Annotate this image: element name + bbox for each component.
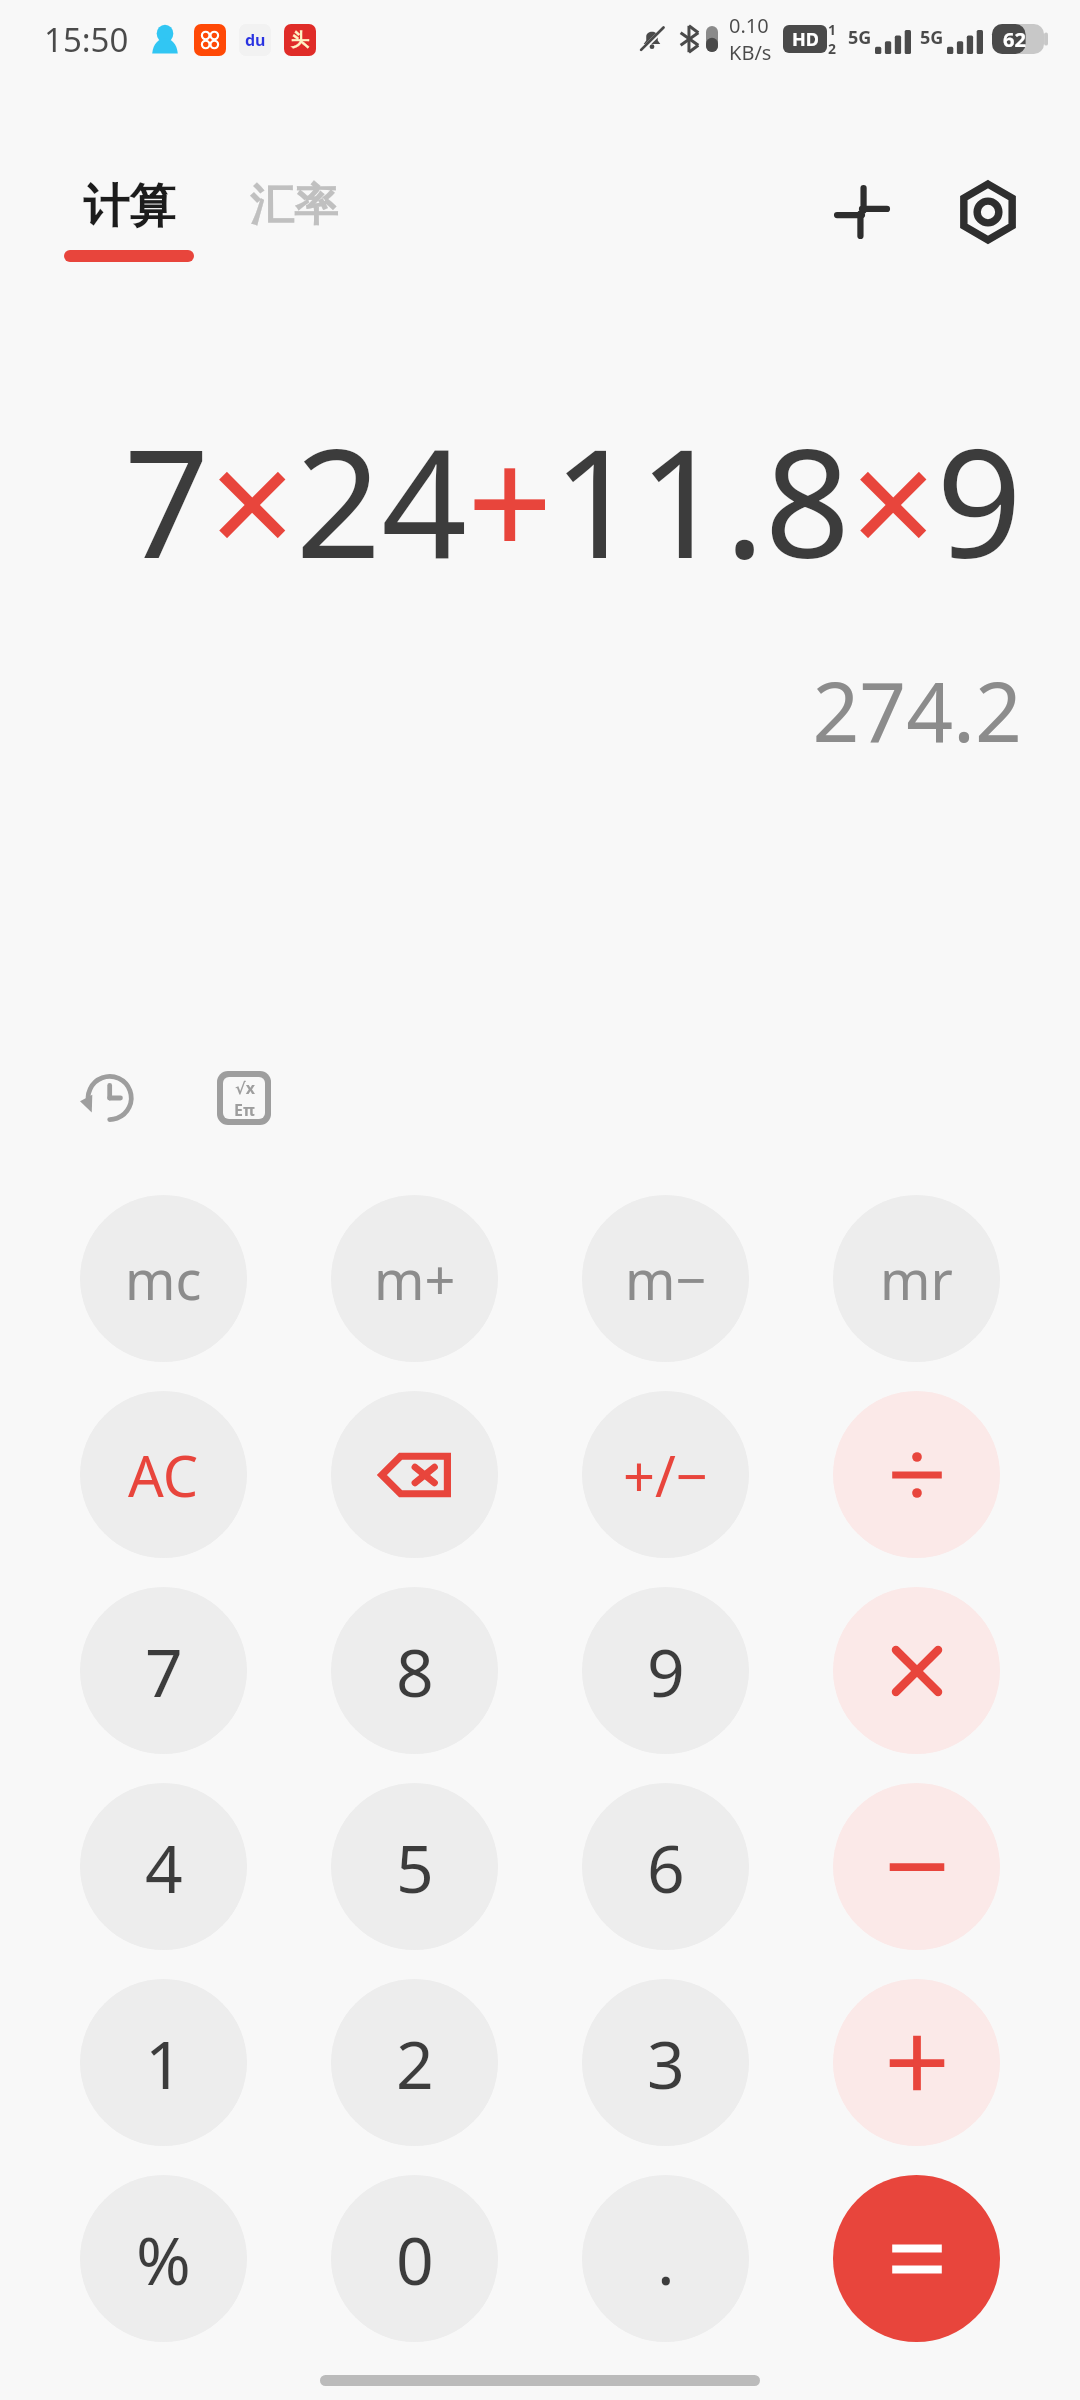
staticText: 5G xyxy=(920,25,944,50)
button[interactable]: 4 xyxy=(80,1783,247,1950)
staticText: m− xyxy=(625,1242,707,1316)
staticText: 计算 xyxy=(83,178,175,236)
staticText: mc xyxy=(125,1242,202,1316)
staticText: 62 xyxy=(1003,26,1026,53)
button[interactable]: 0 xyxy=(331,2175,498,2342)
button[interactable]: 计算 xyxy=(64,178,194,262)
button[interactable]: Divide xyxy=(833,1391,1000,1558)
staticText: du xyxy=(245,29,266,51)
staticText: 2 xyxy=(828,39,837,58)
staticText: 0 xyxy=(396,2214,434,2304)
staticText: . xyxy=(657,2214,675,2304)
staticText: 4 xyxy=(145,1822,183,1912)
button[interactable]: 5 xyxy=(331,1783,498,1950)
button[interactable]: Equals xyxy=(833,2175,1000,2342)
staticText: +/− xyxy=(623,1437,708,1513)
staticText: Eπ xyxy=(234,1099,255,1119)
button[interactable]: . xyxy=(582,2175,749,2342)
staticText: 6 xyxy=(647,1822,685,1912)
button[interactable]: AC xyxy=(80,1391,247,1558)
button[interactable]: Scientific mode xyxy=(198,1052,290,1144)
button[interactable]: Delete xyxy=(331,1391,498,1558)
staticText: 5G xyxy=(848,25,872,50)
button[interactable]: 9 xyxy=(582,1587,749,1754)
button[interactable]: % xyxy=(80,2175,247,2342)
staticText: 汇率 xyxy=(250,178,338,233)
button[interactable]: m+ xyxy=(331,1195,498,1362)
button[interactable]: 1 xyxy=(80,1979,247,2146)
staticText: 7 xyxy=(145,1626,183,1716)
staticText: % xyxy=(136,2214,191,2304)
button[interactable]: 6 xyxy=(582,1783,749,1950)
staticText: 0.10 xyxy=(729,12,769,39)
staticText: 3 xyxy=(647,2018,685,2108)
staticText: KB/s xyxy=(729,39,772,66)
staticText: 274.2 xyxy=(812,654,1022,766)
staticText: √x xyxy=(235,1077,255,1099)
staticText: 1 xyxy=(145,2018,183,2108)
button[interactable]: +/− xyxy=(582,1391,749,1558)
staticText: 15:50 xyxy=(44,17,129,62)
button[interactable]: Collapse screen xyxy=(814,164,910,260)
staticText: 9 xyxy=(647,1626,685,1716)
staticText: m+ xyxy=(374,1242,456,1316)
button[interactable]: mc xyxy=(80,1195,247,1362)
staticText: 2 xyxy=(396,2018,434,2108)
button[interactable]: 3 xyxy=(582,1979,749,2146)
staticText: 5 xyxy=(396,1822,434,1912)
button[interactable]: m− xyxy=(582,1195,749,1362)
button[interactable]: Add xyxy=(833,1979,1000,2146)
button[interactable]: Settings xyxy=(940,164,1036,260)
staticText: 1 xyxy=(828,20,837,39)
button[interactable]: History xyxy=(62,1052,154,1144)
staticText: 8 xyxy=(396,1626,434,1716)
button[interactable]: 8 xyxy=(331,1587,498,1754)
button[interactable]: Multiply xyxy=(833,1587,1000,1754)
button[interactable]: 7 xyxy=(80,1587,247,1754)
staticText: 7×24+11.8×9 xyxy=(123,398,1022,602)
staticText: 头 xyxy=(291,29,309,52)
staticText: AC xyxy=(128,1437,199,1513)
button[interactable]: 2 xyxy=(331,1979,498,2146)
staticText: HD xyxy=(792,27,819,52)
staticText: mr xyxy=(880,1242,953,1316)
button[interactable]: Subtract xyxy=(833,1783,1000,1950)
button[interactable]: mr xyxy=(833,1195,1000,1362)
button[interactable]: 汇率 xyxy=(250,178,338,233)
